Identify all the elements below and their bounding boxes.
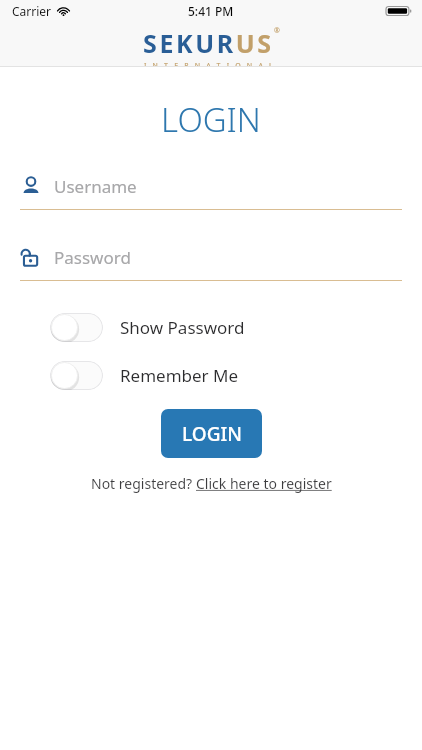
button[interactable]: Password: [20, 242, 402, 281]
staticText: Click here to register: [196, 474, 332, 493]
button[interactable]: Username: [20, 171, 402, 210]
other: Password: [20, 246, 42, 268]
staticText: Remember Me: [120, 364, 239, 387]
button[interactable]: Show Password: [50, 313, 422, 342]
staticText: INTERNATIONAL: [144, 61, 279, 66]
staticText: Password: [54, 246, 131, 269]
staticText: ®: [274, 26, 280, 36]
staticText: 5:41 PM: [188, 3, 234, 19]
staticText: LOGIN: [182, 421, 242, 447]
staticText: Not registered?: [91, 474, 196, 493]
button[interactable]: Not registered?: [91, 474, 332, 493]
staticText: SEKURUS: [143, 26, 274, 60]
staticText: Carrier: [12, 3, 52, 19]
staticText: LOGIN: [0, 97, 422, 142]
button[interactable]: LOGIN: [161, 409, 262, 458]
staticText: Show Password: [120, 316, 245, 339]
other: Username: [20, 175, 42, 197]
button[interactable]: Remember Me: [50, 361, 422, 390]
staticText: Username: [54, 175, 137, 198]
